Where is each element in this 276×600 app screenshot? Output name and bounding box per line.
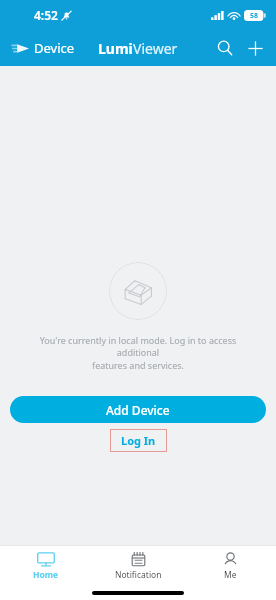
staticText: Notification	[115, 569, 162, 581]
staticText: Me	[224, 569, 237, 581]
staticText: Log In	[121, 433, 156, 448]
button[interactable]: Me	[184, 546, 276, 586]
staticText: Device	[34, 39, 75, 57]
staticText: Lumi	[98, 39, 133, 58]
button[interactable]: Log In	[110, 429, 167, 452]
button[interactable]: Home	[0, 546, 92, 586]
staticText: Viewer	[133, 39, 178, 58]
staticText: Add Device	[106, 402, 170, 418]
button[interactable]: Notification	[92, 546, 184, 586]
staticText: 58	[250, 11, 259, 21]
button[interactable]: Device	[0, 35, 81, 61]
button[interactable]: Search	[210, 33, 240, 63]
staticText: You're currently in local mode. Log in t…	[22, 334, 254, 372]
button[interactable]: Add Device	[10, 396, 266, 423]
staticText: 4:52	[34, 7, 58, 23]
staticText: Home	[33, 569, 59, 581]
button[interactable]: Add	[240, 33, 270, 63]
